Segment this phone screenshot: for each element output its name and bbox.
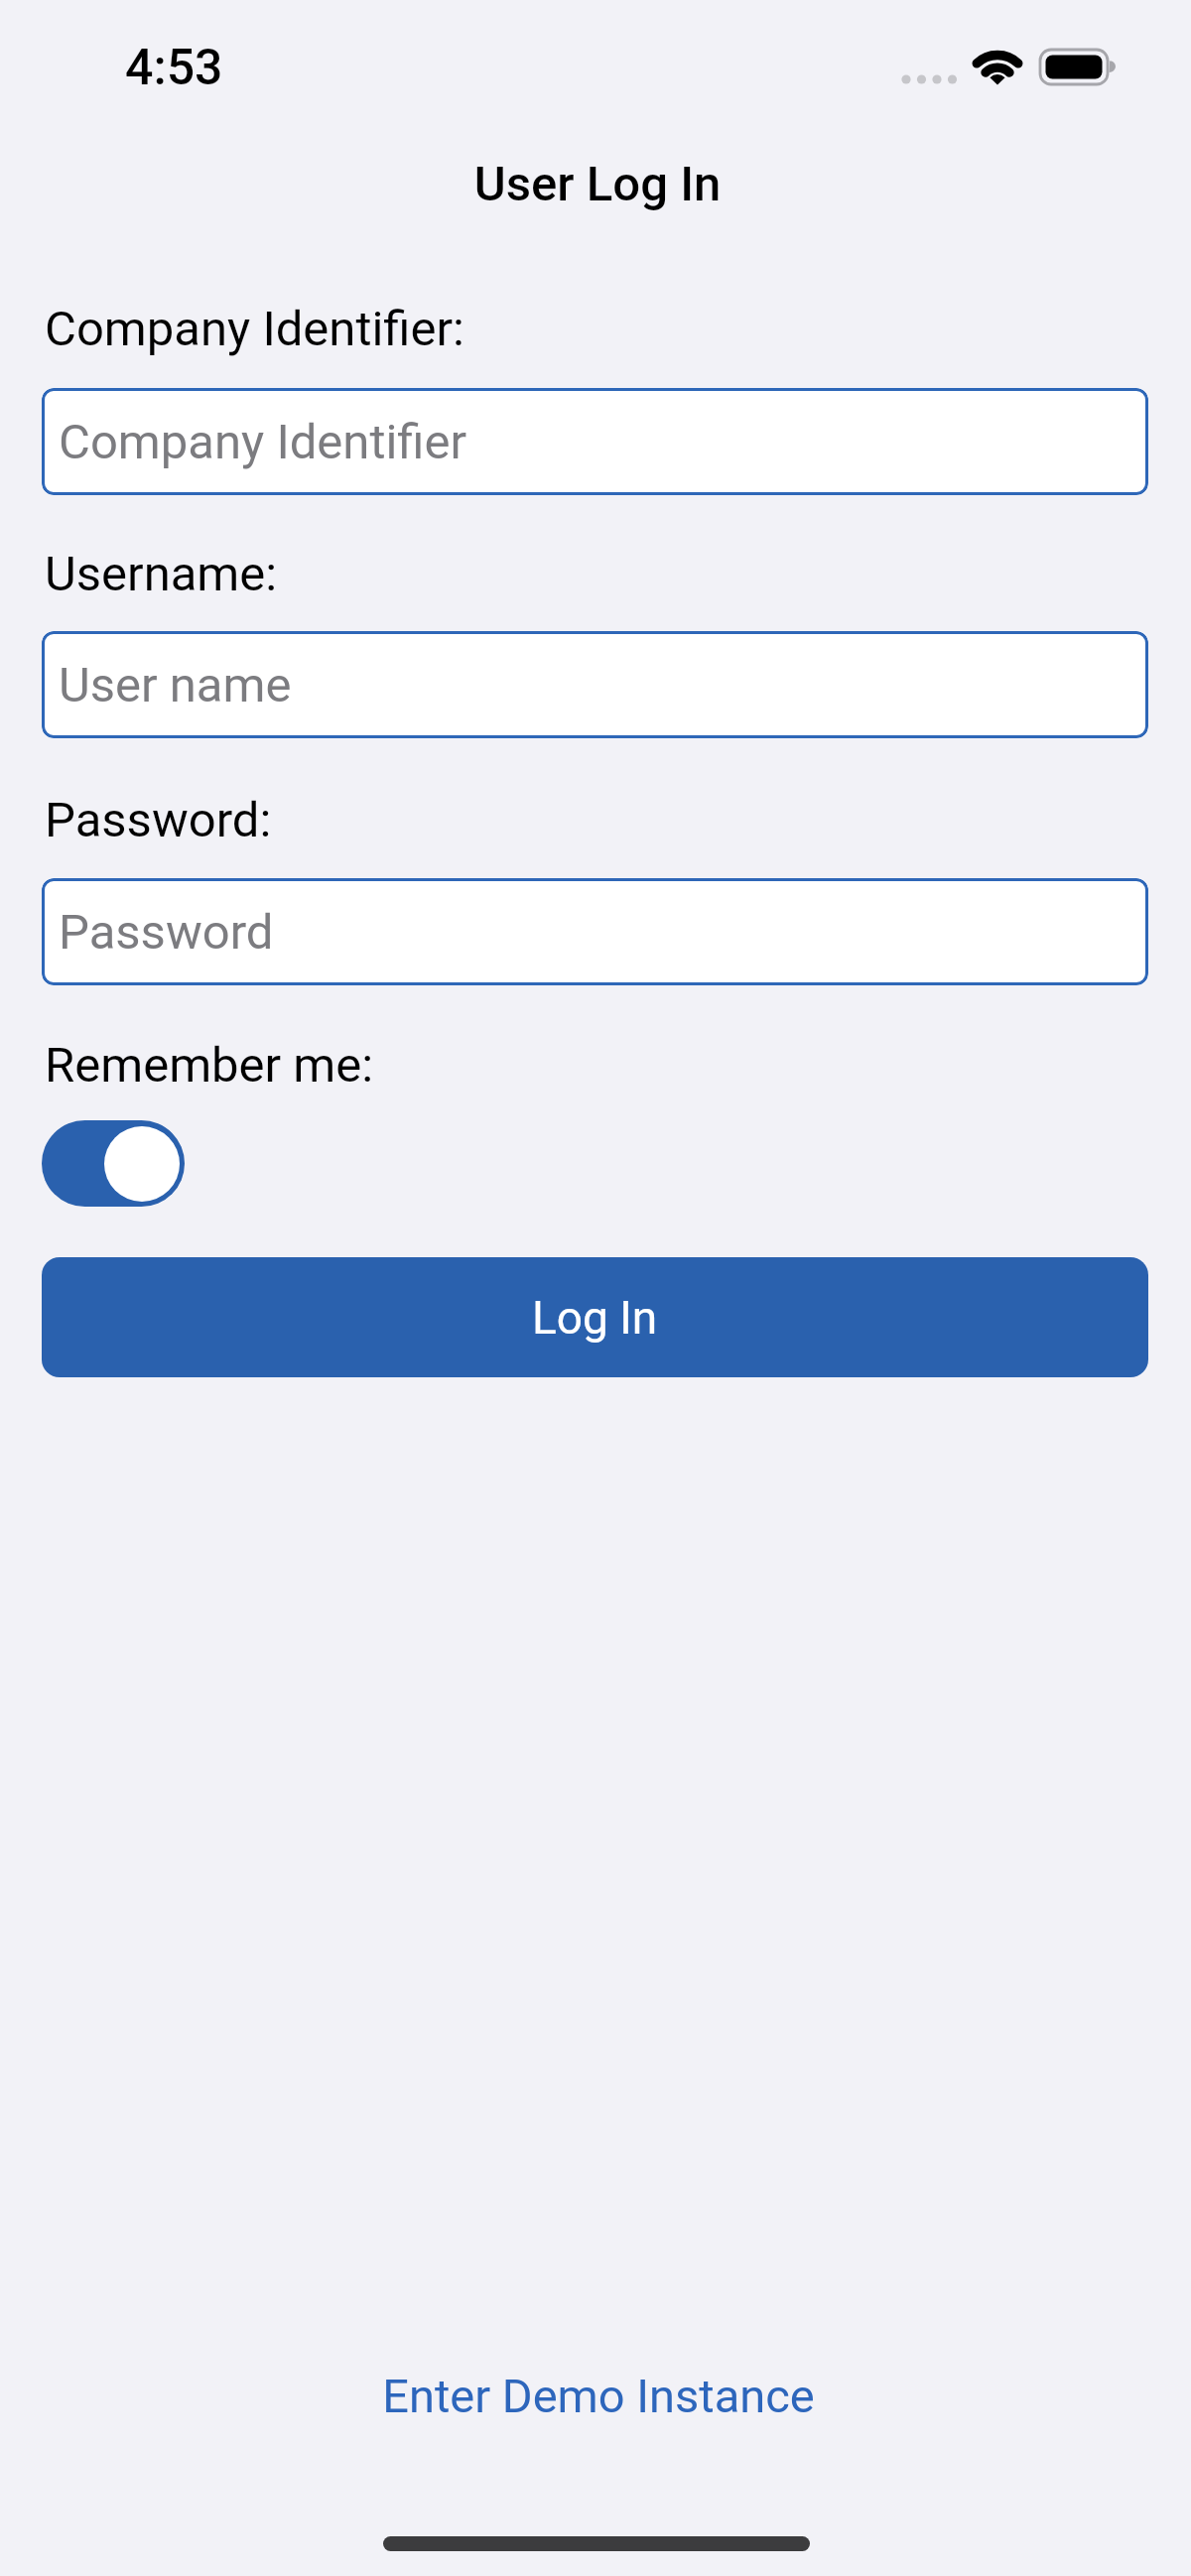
button[interactable]: User name [42,631,1148,738]
staticText: User name [59,657,292,713]
staticText: Company Identifier [59,414,467,470]
button[interactable]: Company Identifier [42,388,1148,495]
staticText: Password: [45,792,272,848]
staticText: Remember me: [45,1037,374,1094]
button[interactable]: Log In [42,1257,1148,1377]
staticText: Password [59,904,274,961]
staticText: 4:53 [125,39,223,97]
staticText: Company Identifier: [45,301,464,357]
button[interactable]: Password [42,878,1148,985]
staticText: Log In [532,1291,658,1345]
staticText: Username: [45,546,278,602]
button[interactable] [42,1120,185,1207]
button[interactable]: Enter Demo Instance [3,2369,1191,2423]
staticText: User Log In [2,156,1191,212]
